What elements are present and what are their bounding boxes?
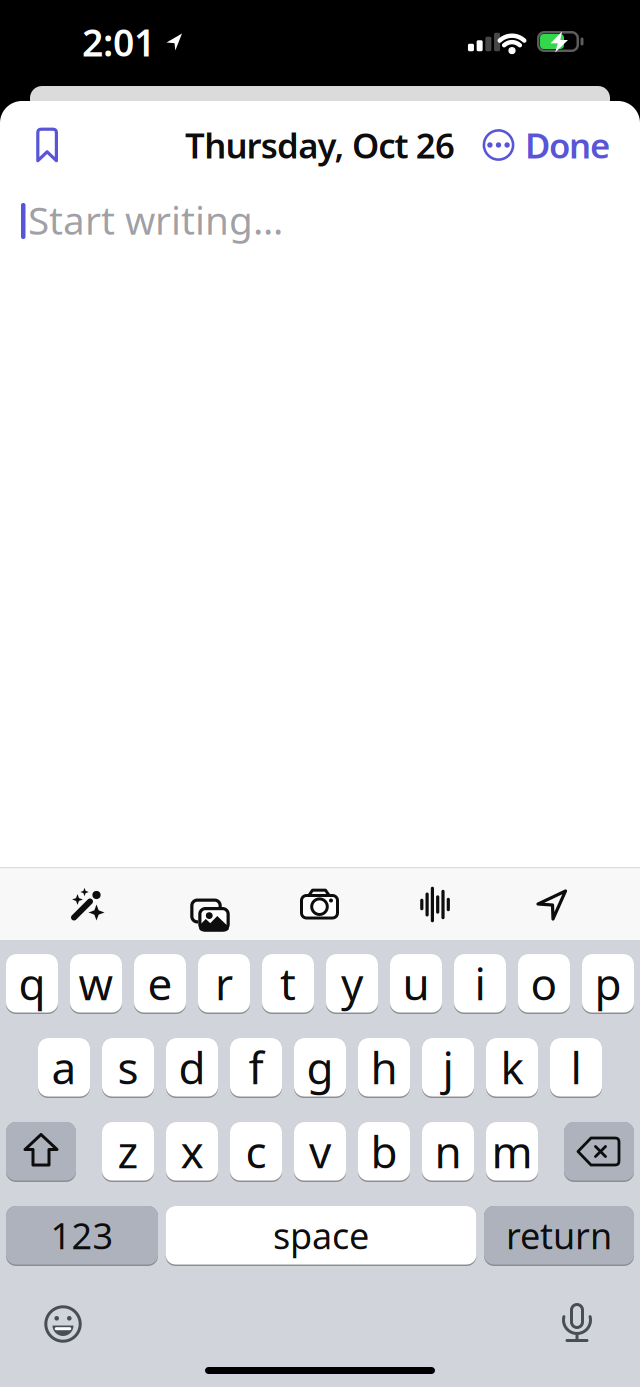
button[interactable]: a (38, 1038, 90, 1098)
staticText: f (248, 1038, 263, 1096)
staticText: w (78, 954, 113, 1012)
button[interactable]: 123 (6, 1206, 158, 1266)
button[interactable]: p (582, 954, 634, 1014)
button[interactable]: Done (525, 122, 610, 168)
button[interactable]: x (166, 1122, 218, 1182)
staticText: r (215, 954, 233, 1012)
button[interactable]: Magic entry (65, 881, 111, 927)
button[interactable]: Audio recording (412, 881, 458, 927)
staticText: k (500, 1038, 523, 1096)
button[interactable]: Camera (296, 881, 342, 927)
button[interactable]: m (486, 1122, 538, 1182)
button[interactable]: o (518, 954, 570, 1014)
button[interactable]: e (134, 954, 186, 1014)
staticText: z (117, 1122, 138, 1180)
button[interactable]: Location (528, 881, 574, 927)
button[interactable]: i (454, 954, 506, 1014)
staticText: g (306, 1038, 333, 1096)
button[interactable]: y (326, 954, 378, 1014)
staticText: o (530, 954, 557, 1012)
button[interactable]: z (102, 1122, 154, 1182)
button[interactable]: f (230, 1038, 282, 1098)
button[interactable]: Thursday, Oct 26 (185, 122, 455, 168)
staticText: y (341, 954, 363, 1012)
button[interactable]: b (358, 1122, 410, 1182)
staticText: i (474, 954, 485, 1012)
staticText: Start writing... (28, 194, 283, 245)
button[interactable]: n (422, 1122, 474, 1182)
button[interactable]: j (422, 1038, 474, 1098)
button[interactable]: Bookmark (36, 127, 58, 162)
staticText: u (402, 954, 429, 1012)
button[interactable]: h (358, 1038, 410, 1098)
staticText: e (147, 954, 172, 1012)
staticText: t (280, 954, 296, 1012)
button[interactable]: More (482, 128, 515, 161)
staticText: v (309, 1122, 331, 1180)
button[interactable]: k (486, 1038, 538, 1098)
staticText: Thursday, Oct 26 (185, 122, 455, 168)
staticText: q (18, 954, 45, 1012)
button[interactable]: d (166, 1038, 218, 1098)
staticText: p (594, 954, 621, 1012)
button[interactable]: r (198, 954, 250, 1014)
button[interactable]: return (484, 1206, 634, 1266)
staticText: n (434, 1122, 461, 1180)
button[interactable]: v (294, 1122, 346, 1182)
staticText: c (245, 1122, 266, 1180)
staticText: b (370, 1122, 397, 1180)
staticText: space (273, 1211, 369, 1259)
button[interactable]: g (294, 1038, 346, 1098)
button[interactable]: Emoji (41, 1302, 85, 1346)
button[interactable]: space (165, 1206, 476, 1266)
staticText: m (491, 1122, 532, 1180)
button[interactable]: Dictate (554, 1299, 600, 1345)
staticText: 123 (50, 1211, 113, 1259)
button[interactable]: Delete (564, 1122, 634, 1182)
button[interactable]: q (6, 954, 58, 1014)
button[interactable]: s (102, 1038, 154, 1098)
button[interactable]: w (70, 954, 122, 1014)
staticText: j (442, 1038, 453, 1096)
button[interactable]: t (262, 954, 314, 1014)
staticText: return (506, 1211, 612, 1259)
staticText: d (178, 1038, 205, 1096)
button[interactable]: Photos (180, 881, 226, 927)
staticText: Done (525, 122, 610, 168)
staticText: s (117, 1038, 138, 1096)
button[interactable]: c (230, 1122, 282, 1182)
staticText: x (180, 1122, 203, 1180)
staticText: 2:01 (82, 17, 155, 67)
button[interactable]: Shift (6, 1122, 76, 1182)
staticText: h (370, 1038, 397, 1096)
button[interactable]: u (390, 954, 442, 1014)
button[interactable]: l (550, 1038, 602, 1098)
staticText: a (51, 1038, 76, 1096)
staticText: l (570, 1038, 581, 1096)
